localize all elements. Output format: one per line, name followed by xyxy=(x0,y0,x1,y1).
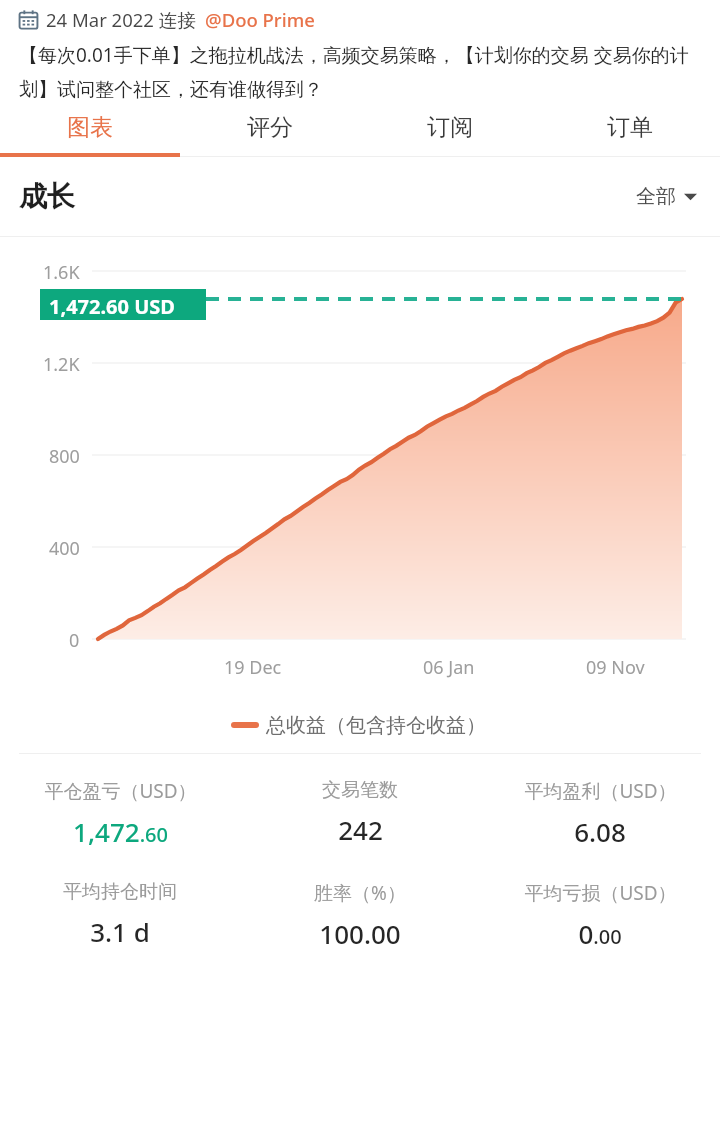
button[interactable]: 全部 xyxy=(632,180,701,213)
staticText: 19 Dec xyxy=(224,655,282,680)
staticText: 平均盈利（USD） xyxy=(524,778,677,804)
staticText: 6.08 xyxy=(574,814,626,849)
button[interactable]: 订单 xyxy=(540,102,720,153)
staticText: 订单 xyxy=(607,113,653,142)
staticText: 平仓盈亏（USD） xyxy=(44,778,197,804)
staticText: 胜率（%） xyxy=(314,880,406,906)
staticText: 1,472.60 USD xyxy=(49,293,175,320)
staticText: 06 Jan xyxy=(423,655,475,680)
button[interactable]: 平仓盈亏（USD） xyxy=(0,778,240,849)
staticText: 242 xyxy=(338,812,383,847)
staticText: 0 xyxy=(69,628,80,653)
staticText: 平均持仓时间 xyxy=(63,880,177,904)
staticText: 评分 xyxy=(247,113,293,142)
staticText: 1.6K xyxy=(43,260,80,285)
staticText: 24 Mar 2022 连接 xyxy=(46,7,196,32)
staticText: 成长 xyxy=(19,179,75,214)
staticText: 400 xyxy=(49,536,80,561)
button[interactable]: 平均持仓时间 xyxy=(0,880,240,949)
button[interactable]: 订阅 xyxy=(360,102,540,153)
staticText: 图表 xyxy=(67,113,113,142)
staticText: 订阅 xyxy=(427,113,473,142)
staticText: 100.00 xyxy=(319,916,401,951)
button[interactable]: 平均亏损（USD） xyxy=(480,880,720,951)
button[interactable]: 图表 xyxy=(0,102,180,153)
staticText: 800 xyxy=(49,444,80,469)
staticText: 0.00 xyxy=(578,916,622,951)
staticText: 【每次0.01手下单】之拖拉机战法，高频交易策略，【计划你的交易 交易你的计划】… xyxy=(19,42,706,102)
staticText: 1,472.60 xyxy=(73,814,168,849)
staticText: 09 Nov xyxy=(586,655,645,680)
staticText: 交易笔数 xyxy=(322,778,398,802)
button[interactable]: @Doo Prime xyxy=(205,7,315,32)
button[interactable]: 交易笔数 xyxy=(240,778,480,847)
staticText: 总收益（包含持仓收益） xyxy=(266,713,486,738)
staticText: @Doo Prime xyxy=(205,7,315,32)
button[interactable]: 平均盈利（USD） xyxy=(480,778,720,849)
button[interactable]: 胜率（%） xyxy=(240,880,480,951)
staticText: 平均亏损（USD） xyxy=(524,880,677,906)
staticText: 1.2K xyxy=(43,352,80,377)
button[interactable]: 评分 xyxy=(180,102,360,153)
staticText: 3.1 d xyxy=(90,914,150,949)
staticText: 全部 xyxy=(636,184,676,209)
